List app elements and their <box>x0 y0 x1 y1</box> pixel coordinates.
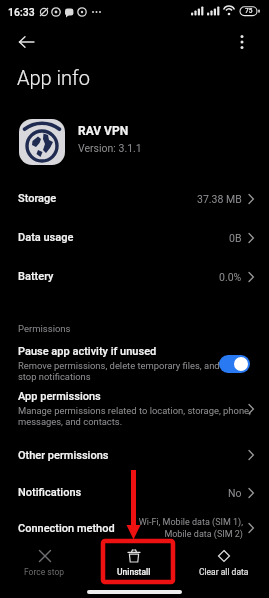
staticText: 0B <box>229 232 242 244</box>
button[interactable]: Notifications <box>0 475 269 510</box>
staticText: Uninstall <box>117 567 151 577</box>
staticText: Permissions <box>18 323 71 334</box>
button[interactable]: Data usage <box>0 218 269 257</box>
staticText: 16:33 <box>8 6 35 18</box>
button[interactable] <box>219 355 250 373</box>
staticText: App permissions <box>18 390 101 403</box>
button[interactable] <box>10 26 42 58</box>
staticText: Other permissions <box>18 449 109 462</box>
staticText: App info <box>17 66 90 89</box>
staticText: Version: 3.1.1 <box>78 142 142 154</box>
staticText: Wi-Fi, Mobile data (SIM 1), Mobile data … <box>138 517 243 539</box>
staticText: 37.38 MB <box>197 193 242 205</box>
staticText: Notifications <box>18 486 82 499</box>
staticText: Force stop <box>24 567 65 577</box>
button[interactable]: Battery <box>0 257 269 296</box>
staticText: Connection method <box>18 522 115 535</box>
button[interactable]: Uninstall <box>89 540 179 586</box>
button[interactable]: Connection method <box>0 510 269 546</box>
staticText: Remove permissions, delete temporary fil… <box>18 360 215 382</box>
button[interactable]: Clear all data <box>179 540 269 586</box>
staticText: 0.0% <box>219 271 242 283</box>
staticText: Manage permissions related to location, … <box>18 405 243 427</box>
staticText: Storage <box>18 192 57 205</box>
button[interactable]: Storage <box>0 179 269 218</box>
button[interactable]: Pause app activity if unused <box>0 345 269 382</box>
button[interactable]: App permissions <box>0 390 269 427</box>
staticText: Clear all data <box>199 567 249 577</box>
staticText: No <box>228 487 242 499</box>
button[interactable]: Other permissions <box>0 435 269 475</box>
button[interactable] <box>229 29 255 55</box>
staticText: RAV VPN <box>78 124 129 138</box>
staticText: Battery <box>18 270 54 283</box>
staticText: Data usage <box>18 231 74 244</box>
staticText: 75 <box>245 7 253 15</box>
button[interactable]: Force stop <box>0 540 89 586</box>
staticText: Pause app activity if unused <box>18 345 157 358</box>
